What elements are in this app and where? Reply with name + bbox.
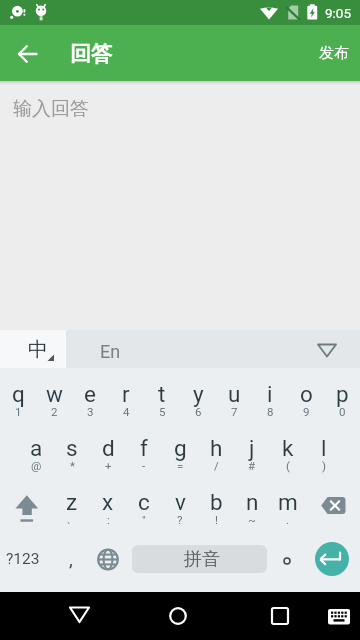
staticText: c (138, 489, 150, 515)
staticText: l (321, 435, 327, 461)
staticText: z (66, 489, 78, 515)
button[interactable]: a (18, 424, 54, 480)
staticText: 9:05 (325, 5, 352, 21)
button[interactable]: h (198, 424, 234, 480)
button[interactable]: g (162, 424, 198, 480)
button[interactable] (304, 330, 356, 368)
staticText: u (228, 381, 241, 407)
staticText: i (267, 381, 273, 407)
button[interactable]: y (180, 368, 216, 424)
button[interactable]: p (324, 368, 360, 424)
staticText: f (140, 435, 148, 461)
button[interactable]: j (234, 424, 270, 480)
staticText: / (214, 459, 219, 472)
staticText: m (278, 489, 298, 515)
staticText: s (66, 435, 78, 461)
staticText: ) (322, 459, 327, 472)
staticText: 5 (159, 405, 166, 418)
button[interactable] (56, 592, 104, 640)
staticText: 回答 (70, 41, 112, 67)
staticText: * (70, 459, 75, 472)
staticText: e (84, 381, 96, 407)
staticText: b (210, 489, 223, 515)
staticText: t (158, 381, 166, 407)
staticText: d (102, 435, 115, 461)
staticText: : (107, 513, 110, 526)
button[interactable]: m (270, 480, 306, 536)
staticText: a (30, 435, 43, 461)
button[interactable]: q (0, 368, 36, 424)
button[interactable]: l (306, 424, 342, 480)
staticText: 6 (195, 405, 202, 418)
staticText: " (142, 513, 146, 526)
staticText: # (248, 459, 256, 472)
button[interactable]: f (126, 424, 162, 480)
staticText: 4 (123, 405, 130, 418)
staticText: 8 (267, 405, 274, 418)
button[interactable]: 中 (0, 330, 66, 368)
staticText: ! (215, 513, 218, 526)
staticText: r (122, 381, 130, 407)
button[interactable]: ?123 (0, 536, 45, 592)
button[interactable]: c (126, 480, 162, 536)
button[interactable]: En (86, 330, 138, 368)
button[interactable]: b (198, 480, 234, 536)
button[interactable]: s (54, 424, 90, 480)
staticText: v (175, 489, 186, 515)
button[interactable]: 拼音 (126, 536, 270, 592)
button[interactable]: e (72, 368, 108, 424)
staticText: 9 (303, 405, 310, 418)
staticText: y (193, 381, 204, 407)
button[interactable]: r (108, 368, 144, 424)
staticText: j (249, 435, 255, 461)
staticText: 发布 (319, 44, 349, 63)
staticText: 输入回答 (13, 97, 89, 121)
staticText: @ (31, 459, 42, 472)
button[interactable]: v (162, 480, 198, 536)
staticText: ?123 (6, 550, 40, 568)
button[interactable]: , (45, 536, 90, 592)
staticText: 7 (231, 405, 238, 418)
staticText: ~ (248, 513, 256, 526)
staticText: + (105, 459, 112, 472)
button[interactable] (306, 480, 360, 536)
button[interactable]: k (270, 424, 306, 480)
button[interactable] (0, 480, 54, 536)
button[interactable] (306, 536, 360, 592)
button[interactable] (90, 536, 126, 592)
staticText: o (300, 381, 313, 407)
button[interactable] (154, 592, 202, 640)
button[interactable]: u (216, 368, 252, 424)
button[interactable]: w (36, 368, 72, 424)
button[interactable] (8, 37, 48, 71)
staticText: , (69, 548, 73, 570)
staticText: - (142, 459, 146, 472)
staticText: = (177, 459, 184, 472)
staticText: w (46, 381, 63, 407)
button[interactable] (270, 536, 306, 592)
button[interactable] (256, 592, 304, 640)
button[interactable]: i (252, 368, 288, 424)
button[interactable] (0, 81, 360, 330)
button[interactable] (316, 592, 360, 640)
staticText: 、 (66, 512, 78, 526)
staticText: 2 (51, 405, 58, 418)
staticText: ? (177, 513, 183, 526)
staticText: n (246, 489, 259, 515)
staticText: q (12, 381, 25, 407)
button[interactable]: 发布 (308, 33, 360, 73)
button[interactable]: o (288, 368, 324, 424)
button[interactable]: t (144, 368, 180, 424)
staticText: k (282, 435, 294, 461)
staticText: . (286, 513, 290, 526)
button[interactable]: z (54, 480, 90, 536)
button[interactable]: d (90, 424, 126, 480)
staticText: 中 (28, 337, 48, 362)
button[interactable]: x (90, 480, 126, 536)
staticText: g (174, 435, 187, 461)
staticText: ( (286, 459, 290, 472)
staticText: p (336, 381, 349, 407)
button[interactable]: n (234, 480, 270, 536)
staticText: h (210, 435, 223, 461)
staticText: 3 (87, 405, 94, 418)
